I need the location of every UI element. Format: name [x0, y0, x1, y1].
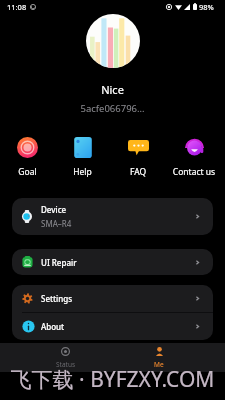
button[interactable]: Device	[12, 198, 213, 235]
button[interactable]: Me	[112, 343, 206, 372]
button[interactable]: Status	[19, 343, 112, 372]
button[interactable]: FAQ	[110, 137, 166, 178]
staticText: Nice	[0, 82, 225, 97]
button[interactable]: Help	[55, 137, 110, 178]
staticText: UI Repair	[41, 257, 77, 268]
staticText: Status	[56, 360, 76, 369]
button[interactable]: UI Repair	[12, 249, 213, 275]
staticText: 98%	[199, 2, 214, 12]
button[interactable]: Goal	[0, 137, 55, 178]
staticText: Device	[41, 204, 67, 215]
staticText: FAQ	[110, 166, 166, 178]
staticText: 11:08	[7, 2, 27, 12]
staticText: Help	[55, 166, 110, 178]
staticText: SMA–R4	[41, 218, 72, 229]
staticText: Goal	[0, 166, 55, 178]
staticText: 飞下载 · BYFZXY.COM	[0, 365, 225, 393]
staticText: 5acfe066796…	[0, 102, 225, 115]
staticText: Contact us	[166, 166, 222, 178]
staticText: Settings	[41, 293, 73, 304]
button[interactable]: Contact us	[166, 137, 222, 178]
staticText: Me	[154, 360, 164, 369]
button[interactable]: Settings	[22, 285, 201, 312]
button[interactable]: About	[22, 313, 201, 340]
staticText: About	[41, 321, 65, 332]
